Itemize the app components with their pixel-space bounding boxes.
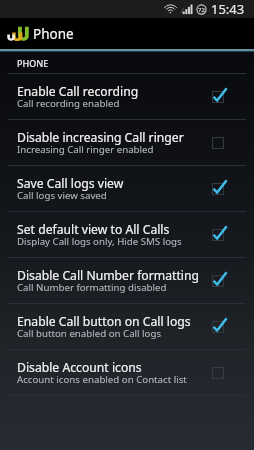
button[interactable]: Checked <box>208 87 228 107</box>
button[interactable]: Disable increasing Call ringer <box>0 120 254 165</box>
staticText: Enable Call recording <box>17 83 139 100</box>
staticText: Call recording enabled <box>17 97 120 110</box>
button[interactable]: Checked <box>208 271 228 291</box>
staticText: PHONE <box>17 57 49 69</box>
staticText: Enable Call button on Call logs <box>17 313 191 330</box>
button[interactable]: Disable Account icons <box>0 350 254 395</box>
staticText: Disable increasing Call ringer <box>17 129 184 146</box>
button[interactable]: Save Call logs view <box>0 166 254 211</box>
staticText: 72 <box>198 6 205 14</box>
button[interactable]: Unchecked <box>208 133 228 153</box>
button[interactable]: Unchecked <box>208 363 228 383</box>
staticText: Display Call logs only, Hide SMS logs <box>17 235 182 248</box>
staticText: Phone <box>33 25 74 43</box>
button[interactable]: Checked <box>208 225 228 245</box>
staticText: Disable Call Number formatting <box>17 267 199 284</box>
staticText: Increasing Call ringer enabled <box>17 143 154 156</box>
button[interactable]: Enable Call recording <box>0 74 254 119</box>
staticText: 15:43 <box>211 0 245 18</box>
staticText: Call logs view saved <box>17 189 107 202</box>
staticText: Save Call logs view <box>17 175 124 192</box>
staticText: Call Number formatting disabled <box>17 281 167 294</box>
button[interactable]: Checked <box>208 317 228 337</box>
button[interactable]: Phone <box>0 18 254 49</box>
staticText: Account icons enabled on Contact list <box>17 373 187 386</box>
staticText: Disable Account icons <box>17 359 142 376</box>
button[interactable]: Set default view to All Calls <box>0 212 254 257</box>
button[interactable]: Checked <box>208 179 228 199</box>
button[interactable]: Enable Call button on Call logs <box>0 304 254 349</box>
staticText: Set default view to All Calls <box>17 221 170 238</box>
button[interactable]: Disable Call Number formatting <box>0 258 254 303</box>
staticText: Call button enabled on Call logs <box>17 327 162 340</box>
